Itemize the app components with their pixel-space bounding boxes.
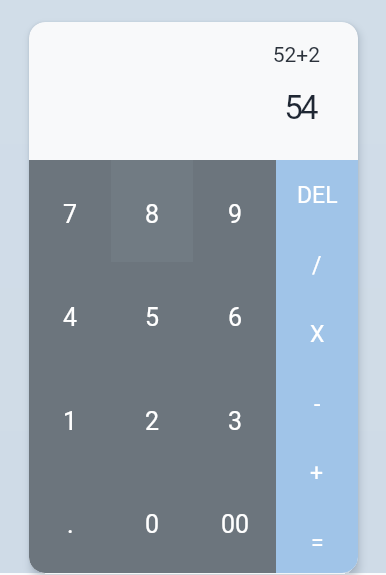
staticText: 3 [228,407,243,436]
button[interactable]: 4 [29,266,111,369]
staticText: 00 [221,510,250,539]
button[interactable]: 0 [111,473,193,573]
staticText: 8 [145,200,160,229]
staticText: 5 [145,303,160,332]
button[interactable]: Decimal point [29,473,111,573]
staticText: 7 [63,200,78,229]
button[interactable]: 1 [29,370,111,473]
button[interactable]: 6 [194,266,276,369]
staticText: X [310,321,325,348]
staticText: 2 [145,407,160,436]
staticText: 0 [145,510,160,539]
staticText: / [312,252,322,279]
staticText: - [314,391,321,418]
button[interactable]: 8 [111,163,193,266]
button[interactable]: Add [276,438,358,508]
staticText: 1 [63,407,78,436]
button[interactable]: Equals [276,508,358,573]
button[interactable]: Subtract [276,369,358,439]
button[interactable]: Multiply [276,299,358,369]
staticText: 9 [228,200,243,229]
staticText: 54 [284,88,316,127]
staticText: 6 [228,303,243,332]
button[interactable]: 3 [194,370,276,473]
button[interactable]: Delete [276,160,358,230]
button[interactable]: Divide [276,230,358,300]
staticText: DEL [297,182,338,209]
staticText: + [310,460,324,487]
staticText: . [67,510,74,539]
button[interactable]: 7 [29,163,111,266]
staticText: = [311,530,324,557]
staticText: 52+2 [272,43,320,68]
button[interactable]: 2 [111,370,193,473]
button[interactable]: 5 [111,266,193,369]
staticText: 4 [63,303,78,332]
button[interactable]: 00 [194,473,276,573]
button[interactable]: 9 [194,163,276,266]
